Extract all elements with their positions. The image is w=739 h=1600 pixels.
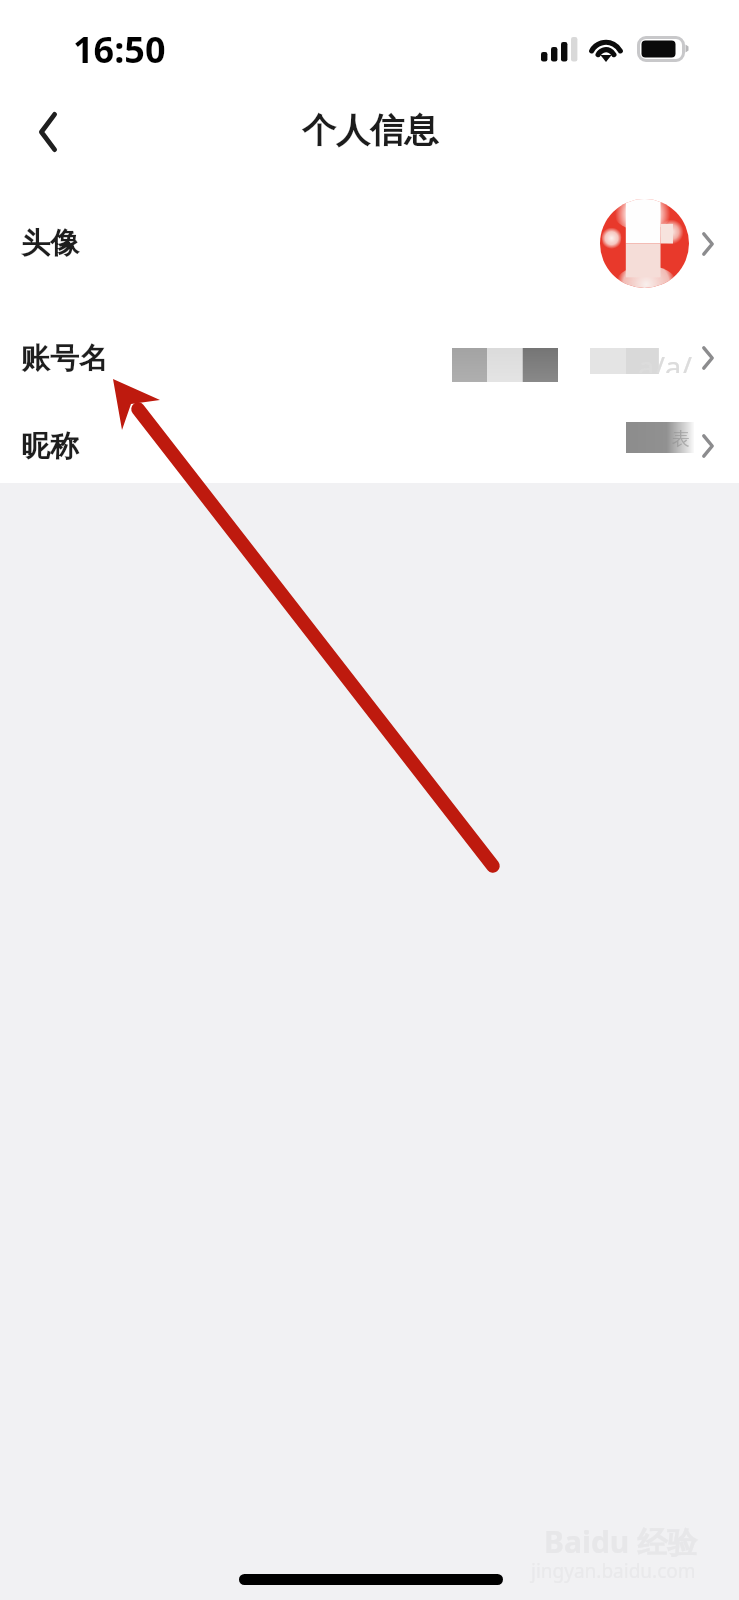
staticText: 16:50: [73, 25, 166, 74]
staticText: 头像: [21, 225, 79, 262]
staticText: 账号名: [21, 340, 108, 377]
staticText: Baidu 经验: [544, 1521, 698, 1562]
staticText: 表: [672, 428, 690, 451]
staticText: 昵称: [21, 428, 79, 465]
button[interactable]: 头像: [0, 180, 739, 307]
button[interactable]: 账号名: [0, 307, 739, 409]
staticText: 个人信息: [302, 109, 438, 152]
button[interactable]: 昵称: [0, 409, 739, 483]
button[interactable]: Back: [8, 90, 88, 174]
staticText: a/a/: [638, 347, 693, 373]
